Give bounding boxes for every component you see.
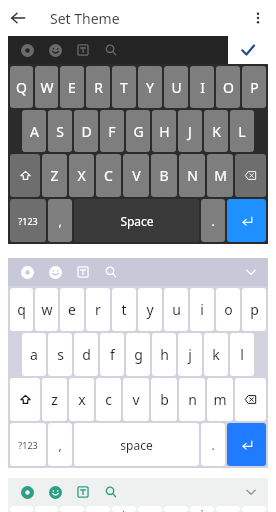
button[interactable]: b [151, 378, 177, 421]
button[interactable]: Search [101, 482, 121, 502]
button[interactable]: G [126, 110, 150, 152]
button[interactable]: V [123, 154, 149, 197]
button[interactable]: j [178, 333, 202, 376]
button[interactable]: Backspace [235, 154, 266, 197]
button[interactable]: s [48, 333, 72, 376]
button[interactable]: U [164, 66, 188, 108]
button[interactable]: Space [74, 199, 199, 242]
button[interactable]: t [112, 288, 136, 331]
button[interactable]: H [152, 110, 176, 152]
button[interactable]: l [230, 333, 254, 376]
button[interactable]: Y [138, 66, 162, 108]
button[interactable]: Text [73, 482, 93, 502]
button[interactable]: Emoji [45, 482, 65, 502]
button[interactable]: Backspace [235, 378, 266, 421]
button[interactable]: D [74, 110, 98, 152]
button[interactable]: a [22, 333, 46, 376]
button[interactable]: Shift [10, 154, 40, 197]
button[interactable]: R [86, 66, 110, 108]
button[interactable]: X [69, 154, 94, 197]
button[interactable]: k [204, 333, 228, 376]
button[interactable]: x [69, 378, 94, 421]
button[interactable]: h [152, 333, 176, 376]
button[interactable]: Collapse [234, 478, 268, 506]
button[interactable]: g [126, 333, 150, 376]
button[interactable]: Emoji [45, 40, 65, 60]
button[interactable]: B [151, 154, 177, 197]
button[interactable]: m [207, 378, 233, 421]
button[interactable]: Search [101, 40, 121, 60]
button[interactable]: q [10, 288, 33, 331]
button[interactable]: o [216, 288, 240, 331]
button[interactable]: Collapse [234, 258, 268, 286]
button[interactable]: Enter [227, 423, 266, 466]
button[interactable]: O [216, 66, 240, 108]
staticText: X [77, 166, 86, 185]
staticText: x [78, 390, 86, 409]
button[interactable]: C [96, 154, 121, 197]
button[interactable]: i [190, 288, 214, 331]
button[interactable]: Z [42, 154, 67, 197]
button[interactable]: Theme [17, 262, 37, 282]
button[interactable]: z [42, 378, 67, 421]
button[interactable]: , [48, 423, 72, 466]
button[interactable]: Theme [17, 482, 37, 502]
button[interactable]: v [123, 378, 149, 421]
button[interactable]: S [48, 110, 72, 152]
button[interactable]: Shift [10, 378, 40, 421]
button[interactable]: space [74, 423, 199, 466]
button[interactable]: F [100, 110, 124, 152]
button[interactable]: u [164, 288, 188, 331]
button[interactable]: , [48, 199, 72, 242]
button[interactable]: . [201, 423, 225, 466]
button[interactable]: A [22, 110, 46, 152]
button[interactable]: E [60, 66, 84, 108]
button[interactable]: Text [73, 262, 93, 282]
button[interactable]: t [112, 506, 136, 512]
button[interactable]: I [190, 66, 214, 108]
button[interactable]: L [230, 110, 254, 152]
button[interactable]: K [204, 110, 228, 152]
button[interactable]: n [179, 378, 205, 421]
button[interactable]: M [207, 154, 233, 197]
button[interactable]: c [96, 378, 121, 421]
button[interactable]: p [242, 288, 266, 331]
button[interactable]: Theme [8, 478, 268, 512]
button[interactable]: Search [101, 262, 121, 282]
button[interactable]: . [201, 199, 225, 242]
button[interactable]: Emoji [45, 262, 65, 282]
button[interactable]: y [138, 288, 162, 331]
button[interactable]: P [242, 66, 266, 108]
button[interactable]: Back [0, 0, 36, 36]
button[interactable]: J [178, 110, 202, 152]
button[interactable]: d [74, 333, 98, 376]
button[interactable]: Q [10, 66, 33, 108]
button[interactable]: Theme [8, 36, 268, 244]
button[interactable]: Theme [8, 258, 268, 468]
button[interactable]: More options [240, 0, 276, 36]
button[interactable]: e [60, 288, 84, 331]
button[interactable]: W [35, 66, 58, 108]
button[interactable]: w [35, 288, 58, 331]
button[interactable]: f [100, 333, 124, 376]
button[interactable]: ?123 [10, 423, 46, 466]
button[interactable]: i [190, 506, 214, 512]
button[interactable]: r [86, 288, 110, 331]
button[interactable]: Text [73, 40, 93, 60]
staticText: B [159, 166, 169, 185]
button[interactable]: ?123 [10, 199, 46, 242]
button[interactable]: N [179, 154, 205, 197]
button[interactable]: Selected [228, 36, 268, 64]
button[interactable]: T [112, 66, 136, 108]
button[interactable]: Theme [17, 40, 37, 60]
button[interactable]: Enter [227, 199, 266, 242]
